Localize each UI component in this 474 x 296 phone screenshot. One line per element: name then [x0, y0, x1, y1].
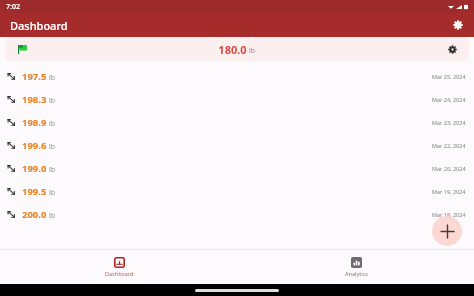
staticText: Mar 19, 2024 [432, 188, 466, 195]
button[interactable]: 199.5 [0, 180, 474, 203]
button[interactable]: Goal settings [435, 37, 469, 61]
button[interactable]: 198.3 [0, 88, 474, 111]
staticText: lb [49, 96, 56, 106]
staticText: Mar 20, 2024 [432, 165, 466, 172]
button[interactable]: 197.5 [0, 65, 474, 88]
button[interactable]: Analytics [321, 257, 391, 277]
staticText: Mar 18, 2024 [432, 211, 466, 218]
staticText: Mar 25, 2024 [432, 73, 466, 80]
button[interactable]: 199.6 [0, 134, 474, 157]
staticText: Mar 23, 2024 [432, 119, 466, 126]
staticText: 198.3 [22, 93, 47, 106]
staticText: lb [249, 46, 256, 56]
staticText: 199.6 [22, 139, 47, 152]
staticText: Analytics [345, 270, 368, 277]
button[interactable]: 200.0 [0, 203, 474, 226]
staticText: 199.5 [22, 185, 47, 198]
staticText: Mar 24, 2024 [432, 96, 466, 103]
staticText: 197.5 [22, 70, 47, 83]
staticText: lb [49, 119, 56, 129]
staticText: 199.0 [22, 162, 47, 175]
staticText: Dashboard [10, 18, 68, 33]
staticText: 180.0 [218, 42, 247, 57]
staticText: Dashboard [105, 270, 134, 277]
staticText: Mar 22, 2024 [432, 142, 466, 149]
staticText: lb [49, 73, 56, 83]
staticText: lb [49, 165, 56, 175]
staticText: 200.0 [22, 208, 47, 221]
button[interactable]: Add entry [432, 216, 462, 246]
staticText: lb [49, 188, 56, 198]
staticText: lb [49, 211, 56, 221]
staticText: 7:02 [6, 2, 20, 12]
staticText: 198.9 [22, 116, 47, 129]
button[interactable]: 180.0 [5, 37, 469, 61]
button[interactable]: 198.9 [0, 111, 474, 134]
button[interactable]: Dashboard [84, 257, 154, 277]
button[interactable]: 199.0 [0, 157, 474, 180]
button[interactable]: Settings [448, 15, 468, 35]
staticText: lb [49, 142, 56, 152]
